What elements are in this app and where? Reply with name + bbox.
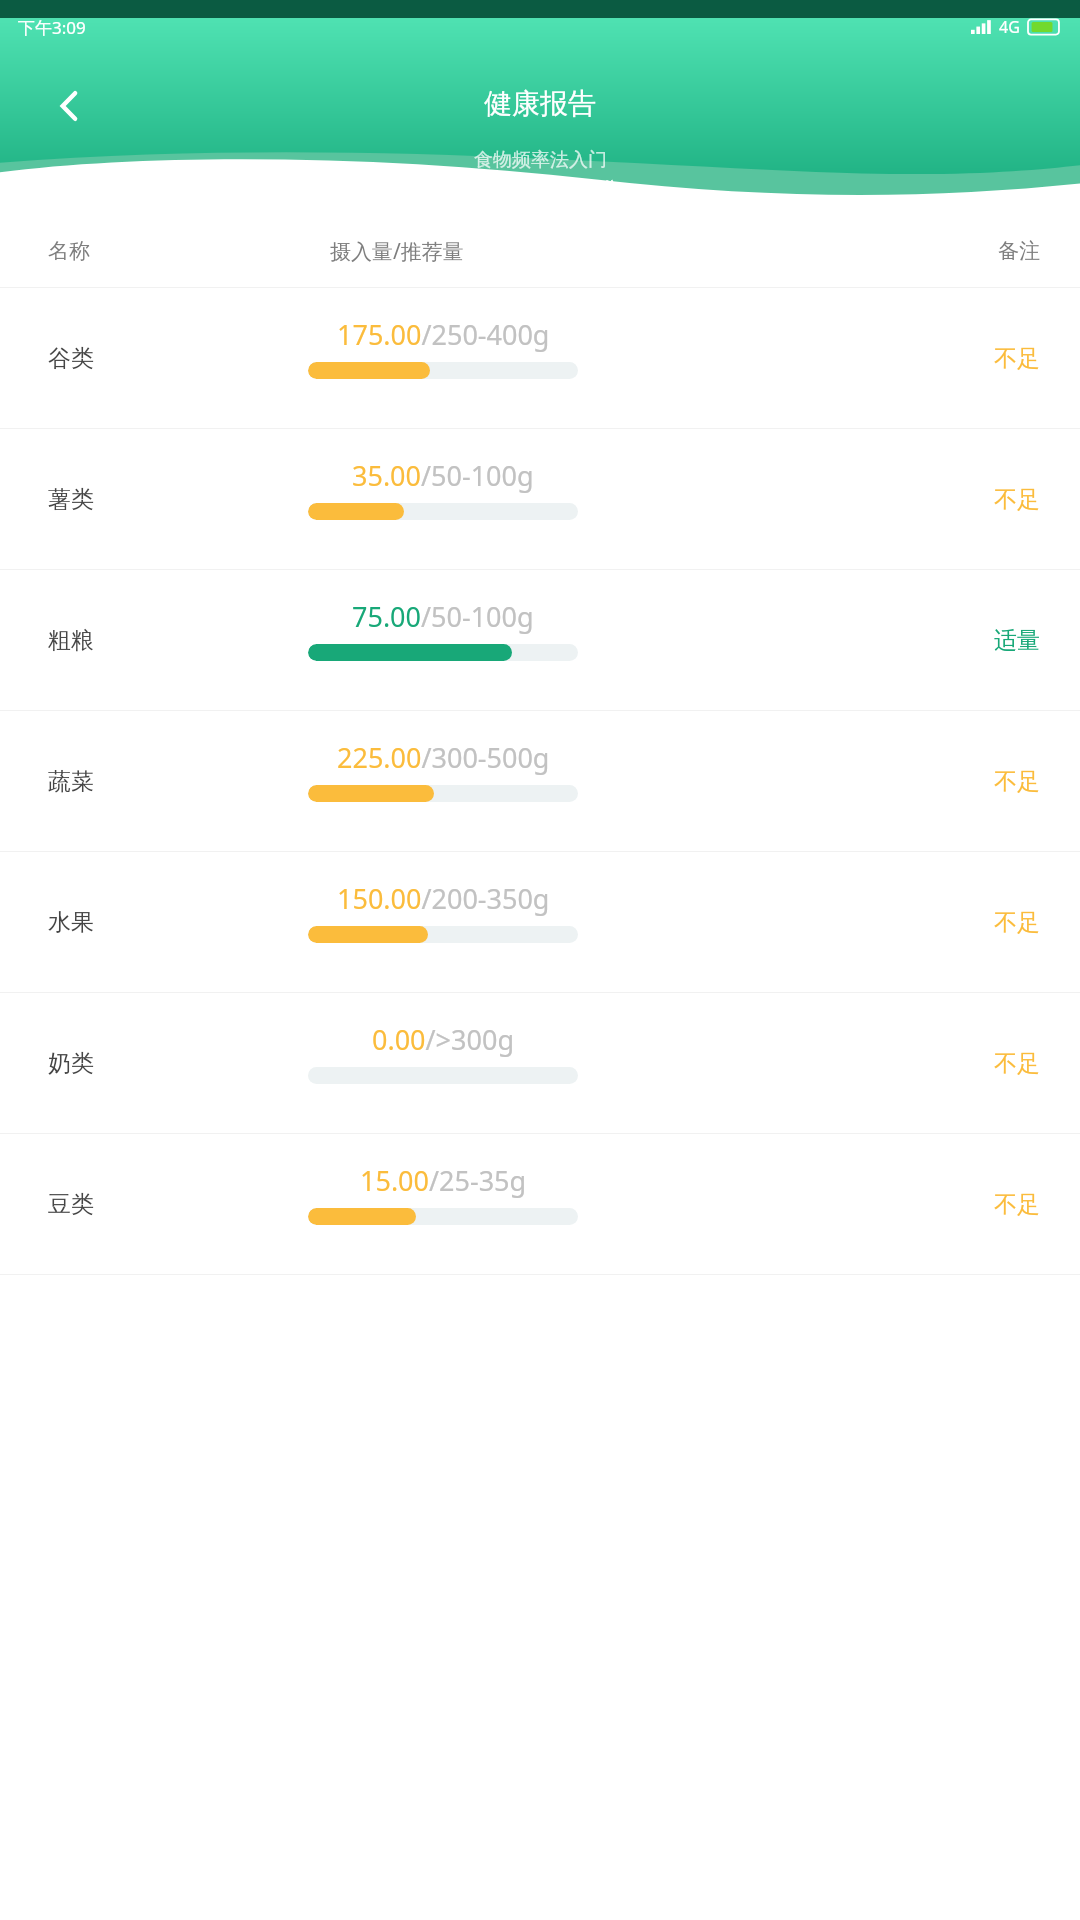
staticText: 备注 xyxy=(998,238,1040,264)
staticText: 下午3:09 xyxy=(18,16,86,39)
staticText: 不足 xyxy=(994,767,1040,796)
staticText: 15.00/25-35g xyxy=(360,1162,527,1199)
button[interactable]: 谷类 xyxy=(0,288,1080,428)
button[interactable]: 奶类 xyxy=(0,993,1080,1133)
button[interactable]: 水果 xyxy=(0,852,1080,992)
button[interactable]: 豆类 xyxy=(0,1134,1080,1274)
staticText: 水果 xyxy=(48,908,94,937)
staticText: 食物频率法入门 xyxy=(474,148,607,172)
staticText: 225.00/300-500g xyxy=(337,739,550,776)
staticText: 奶类 xyxy=(48,1049,94,1078)
staticText: 适量 xyxy=(994,626,1040,655)
staticText: 粗粮 xyxy=(48,626,94,655)
staticText: 分 xyxy=(600,177,620,202)
button[interactable]: 返回 xyxy=(40,76,100,136)
staticText: 不足 xyxy=(994,1049,1040,1078)
button[interactable]: 蔬菜 xyxy=(0,711,1080,851)
staticText: 豆类 xyxy=(48,1190,94,1219)
staticText: 不足 xyxy=(994,908,1040,937)
button[interactable]: 粗粮 xyxy=(0,570,1080,710)
staticText: 4G xyxy=(999,16,1020,38)
staticText: 摄入量/推荐量 xyxy=(330,237,464,266)
staticText: 175.00/250-400g xyxy=(337,316,550,353)
staticText: 蔬菜 xyxy=(48,767,94,796)
staticText: 健康报告 xyxy=(484,86,596,121)
staticText: 不足 xyxy=(994,1190,1040,1219)
staticText: 0.00/>300g xyxy=(372,1021,514,1058)
staticText: 35.00/50-100g xyxy=(352,457,534,494)
staticText: 名称 xyxy=(48,238,90,264)
staticText: 64.0 xyxy=(461,174,600,214)
staticText: 谷类 xyxy=(48,344,94,373)
button[interactable]: 薯类 xyxy=(0,429,1080,569)
staticText: 75.00/50-100g xyxy=(352,598,534,635)
staticText: 不足 xyxy=(994,485,1040,514)
staticText: 不足 xyxy=(994,344,1040,373)
staticText: 薯类 xyxy=(48,485,94,514)
staticText: 150.00/200-350g xyxy=(337,880,550,917)
